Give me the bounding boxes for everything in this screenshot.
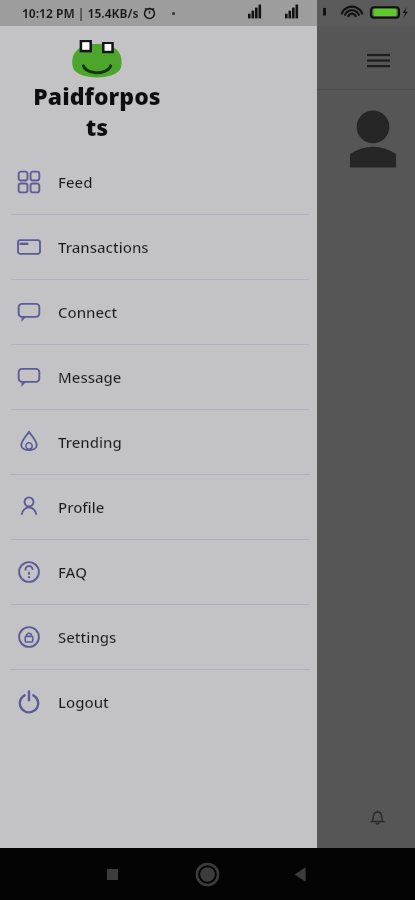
staticText: Settings bbox=[58, 627, 117, 647]
button[interactable]: Notifications bbox=[360, 800, 394, 834]
staticText: 10:12 PM | 15.4KB/s bbox=[22, 5, 139, 21]
button[interactable]: FAQ bbox=[0, 540, 317, 604]
button[interactable]: Home bbox=[196, 863, 219, 886]
button[interactable]: Logout bbox=[0, 670, 317, 734]
staticText: Message bbox=[58, 367, 122, 387]
staticText: Profile bbox=[58, 497, 105, 517]
button[interactable]: Trending bbox=[0, 410, 317, 474]
staticText: Logout bbox=[58, 692, 109, 712]
button[interactable]: Settings bbox=[0, 605, 317, 669]
staticText: FAQ bbox=[58, 562, 87, 582]
button[interactable]: Message bbox=[0, 345, 317, 409]
button[interactable]: Open navigation menu bbox=[358, 40, 398, 80]
staticText: Transactions bbox=[58, 237, 149, 257]
button[interactable]: Feed bbox=[0, 150, 317, 214]
button[interactable]: Connect bbox=[0, 280, 317, 344]
staticText: Paidforposts bbox=[29, 80, 165, 142]
staticText: Feed bbox=[58, 172, 93, 192]
staticText: Connect bbox=[58, 302, 118, 322]
button[interactable]: Back bbox=[292, 866, 309, 883]
staticText: Trending bbox=[58, 432, 122, 452]
button[interactable]: Transactions bbox=[0, 215, 317, 279]
button[interactable]: Profile bbox=[0, 475, 317, 539]
